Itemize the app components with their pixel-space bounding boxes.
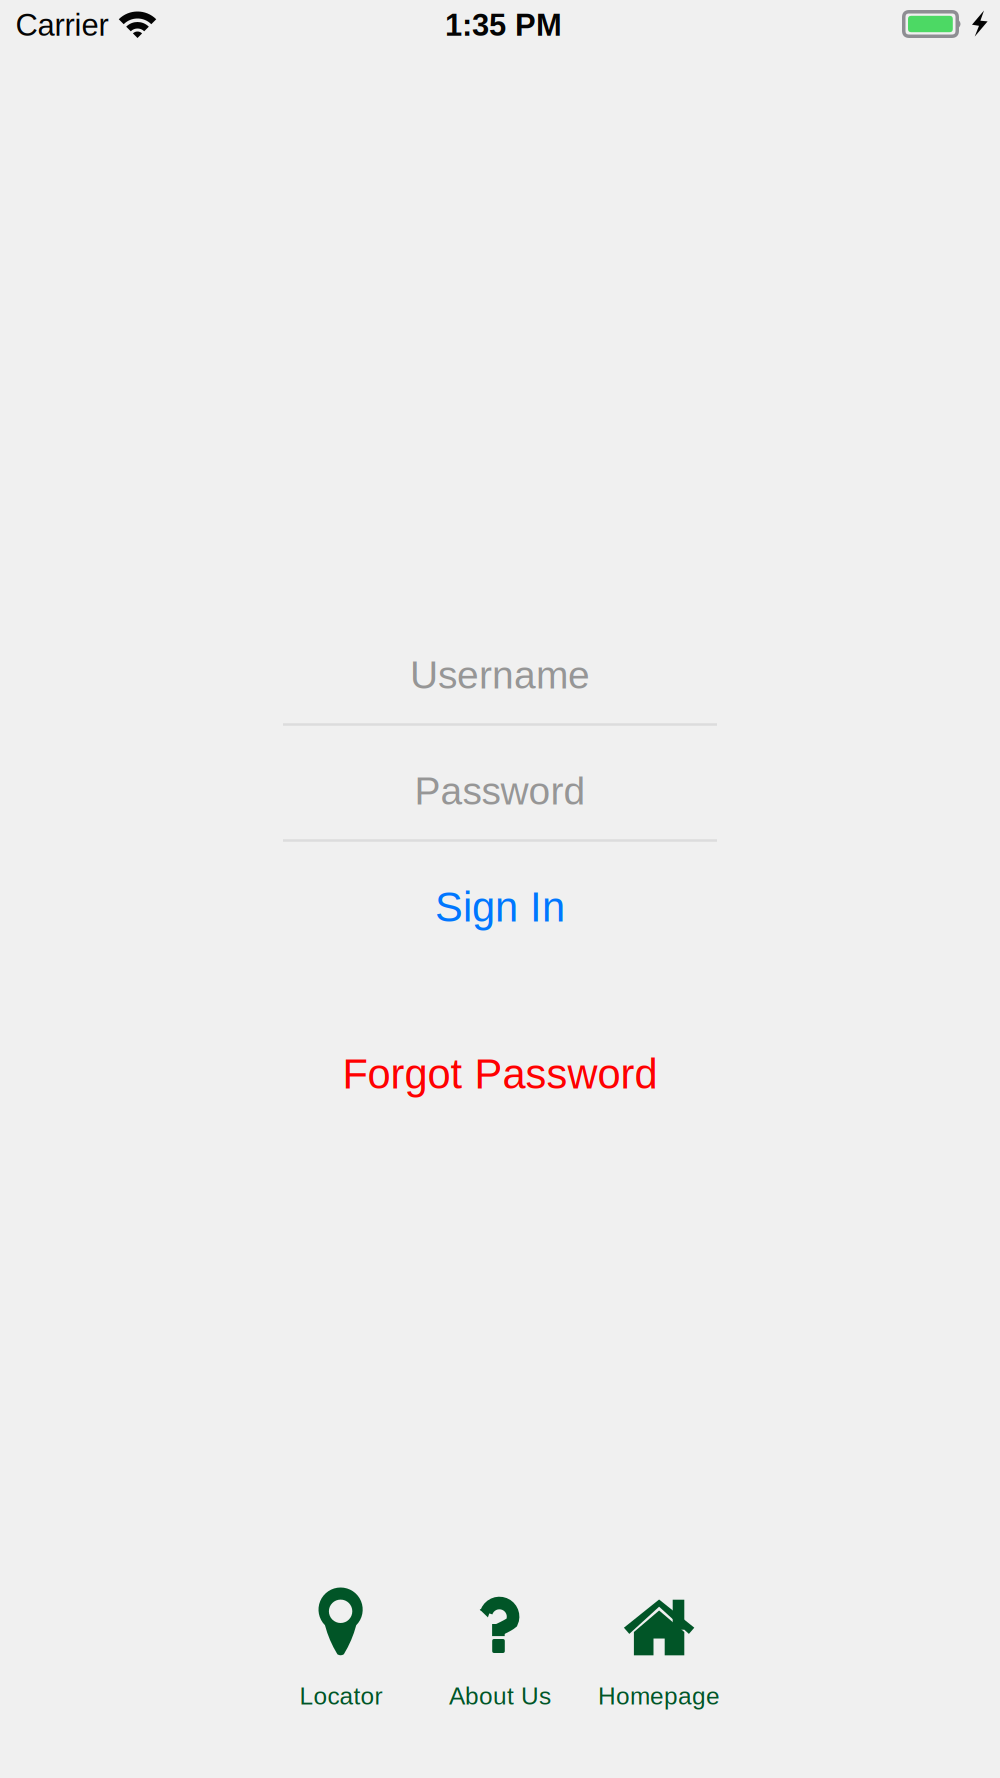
- staticText: Username: [410, 653, 590, 697]
- staticText: Locator: [299, 1682, 382, 1710]
- button[interactable]: Sign In: [283, 864, 717, 950]
- button[interactable]: Homepage: [579, 1588, 738, 1713]
- staticText: Homepage: [598, 1682, 720, 1710]
- staticText: Password: [414, 769, 585, 813]
- button[interactable]: Username: [283, 626, 717, 726]
- staticText: Carrier: [15, 8, 108, 42]
- button[interactable]: About Us: [420, 1588, 579, 1713]
- staticText: About Us: [449, 1682, 551, 1710]
- button[interactable]: Password: [283, 742, 717, 842]
- staticText: Forgot Password: [342, 1051, 657, 1097]
- button[interactable]: Forgot Password: [283, 1031, 717, 1117]
- staticText: 1:35 PM: [445, 8, 562, 42]
- button[interactable]: Locator: [261, 1588, 420, 1713]
- staticText: Sign In: [435, 884, 565, 930]
